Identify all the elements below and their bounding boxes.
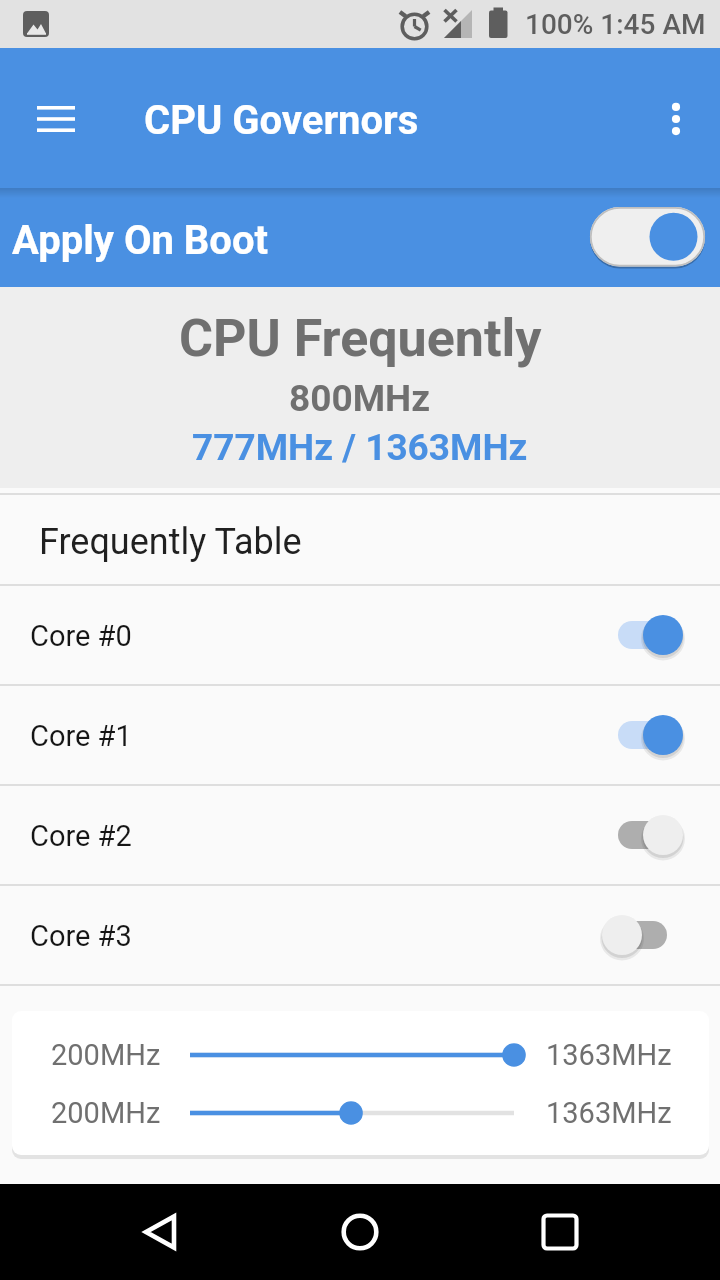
button[interactable]: Toggle core [613,711,683,759]
staticText: Core #1 [30,719,132,753]
button[interactable]: Apply On Boot [0,188,720,287]
button[interactable]: Frequency range slider [190,1091,514,1135]
button[interactable]: Open navigation drawer [22,85,90,153]
button[interactable]: Toggle core [613,811,683,859]
staticText: 777MHz / 1363MHz [192,426,528,469]
staticText: 800MHz [289,377,431,420]
staticText: Core #3 [30,919,132,953]
button[interactable]: Frequency range slider [190,1033,514,1077]
button[interactable]: Home [322,1194,398,1270]
button[interactable]: Core #3 [0,886,720,984]
button[interactable]: Toggle core [613,611,683,659]
button[interactable]: More options [645,88,707,150]
staticText: 1363MHz [546,1038,672,1072]
staticText: Core #0 [30,619,132,653]
staticText: CPU Frequently [179,308,542,369]
staticText: 100% 1:45 AM [525,8,706,41]
button[interactable]: Apply on boot toggle [590,207,705,269]
button[interactable]: Core #2 [0,786,720,884]
staticText: 1363MHz [546,1096,672,1130]
button[interactable]: Core #1 [0,686,720,784]
button[interactable]: Recent apps [522,1194,598,1270]
staticText: Core #2 [30,819,132,853]
button[interactable]: Toggle core [613,911,683,959]
button[interactable]: Back [122,1194,198,1270]
staticText: 200MHz [51,1096,161,1130]
staticText: Apply On Boot [12,217,269,264]
staticText: 200MHz [51,1038,161,1072]
staticText: CPU Governors [144,97,419,144]
button[interactable]: Core #0 [0,586,720,684]
staticText: Frequently Table [39,521,302,563]
